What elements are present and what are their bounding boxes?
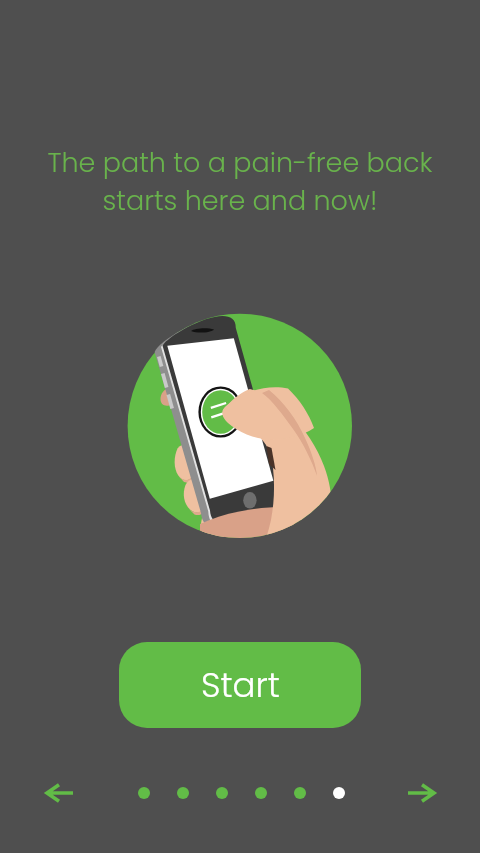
- button[interactable]: [177, 787, 189, 799]
- button[interactable]: [333, 787, 345, 799]
- button[interactable]: Next: [398, 773, 444, 813]
- button[interactable]: Start: [119, 642, 361, 728]
- staticText: The path to a pain-free back starts here…: [0, 144, 480, 219]
- button[interactable]: [294, 787, 306, 799]
- button[interactable]: Previous: [37, 773, 83, 813]
- staticText: Start: [201, 661, 280, 709]
- button[interactable]: [138, 787, 150, 799]
- button[interactable]: [216, 787, 228, 799]
- button[interactable]: [255, 787, 267, 799]
